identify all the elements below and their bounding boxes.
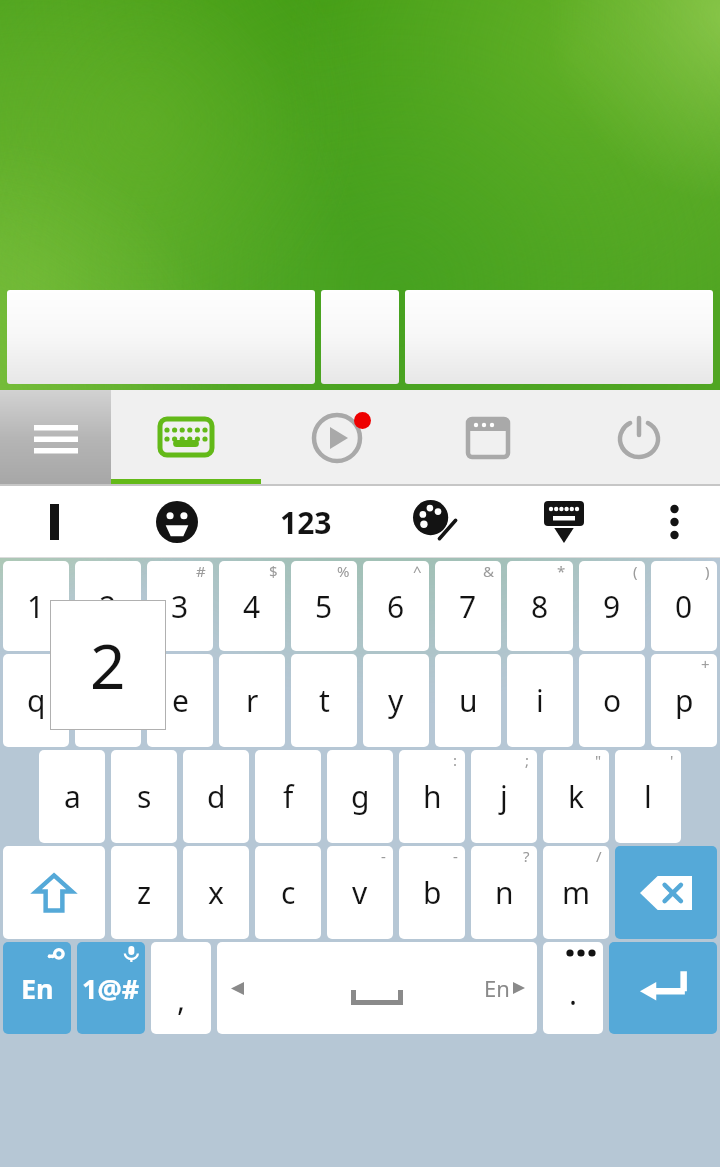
- staticText: f: [283, 776, 294, 817]
- button[interactable]: u: [435, 654, 501, 747]
- button[interactable]: 9: [579, 561, 645, 651]
- button[interactable]: n: [471, 846, 537, 939]
- staticText: p: [675, 680, 694, 721]
- staticText: ,: [177, 979, 186, 1020]
- button[interactable]: 8: [507, 561, 573, 651]
- button[interactable]: 1: [3, 561, 69, 651]
- staticText: (: [633, 561, 638, 581]
- button[interactable]: 2: [75, 561, 141, 651]
- button[interactable]: Space: [217, 942, 537, 1034]
- staticText: :: [453, 750, 458, 770]
- staticText: En: [21, 970, 54, 1007]
- button[interactable]: Period: [543, 942, 603, 1034]
- button[interactable]: h: [399, 750, 465, 843]
- staticText: l: [644, 776, 652, 817]
- button[interactable]: w: [75, 654, 141, 747]
- button[interactable]: 5: [291, 561, 357, 651]
- staticText: n: [495, 872, 514, 913]
- button[interactable]: q: [3, 654, 69, 747]
- button[interactable]: Keyboard: [111, 390, 261, 486]
- button[interactable]: Play: [261, 390, 412, 486]
- button[interactable]: o: [579, 654, 645, 747]
- staticText: z: [137, 872, 152, 913]
- button[interactable]: p: [651, 654, 717, 747]
- button[interactable]: Shift: [3, 846, 105, 939]
- button[interactable]: Clipboard: [0, 486, 112, 558]
- staticText: b: [423, 872, 442, 913]
- button[interactable]: 0: [651, 561, 717, 651]
- button[interactable]: g: [327, 750, 393, 843]
- staticText: t: [319, 680, 330, 721]
- staticText: ?: [523, 846, 530, 866]
- staticText: u: [459, 680, 478, 721]
- staticText: ): [705, 561, 710, 581]
- staticText: &: [483, 561, 494, 581]
- button[interactable]: 7: [435, 561, 501, 651]
- button[interactable]: v: [327, 846, 393, 939]
- staticText: 1@#: [82, 970, 140, 1007]
- button[interactable]: y: [363, 654, 429, 747]
- button[interactable]: Backspace: [615, 846, 717, 939]
- button[interactable]: i: [507, 654, 573, 747]
- staticText: ^: [413, 561, 422, 581]
- button[interactable]: Suggestion: [405, 290, 713, 384]
- button[interactable]: z: [111, 846, 177, 939]
- staticText: o: [603, 680, 622, 721]
- button[interactable]: r: [219, 654, 285, 747]
- button[interactable]: a: [39, 750, 105, 843]
- button[interactable]: j: [471, 750, 537, 843]
- staticText: 7: [459, 586, 477, 627]
- staticText: 0: [675, 586, 693, 627]
- button[interactable]: x: [183, 846, 249, 939]
- button[interactable]: 123: [241, 486, 370, 558]
- staticText: x: [208, 872, 224, 913]
- button[interactable]: Emoji: [112, 486, 241, 558]
- button[interactable]: Power: [563, 390, 714, 486]
- staticText: y: [388, 680, 404, 721]
- staticText: *: [557, 561, 566, 581]
- button[interactable]: 4: [219, 561, 285, 651]
- button[interactable]: l: [615, 750, 681, 843]
- button[interactable]: Suggestion: [7, 290, 315, 384]
- button[interactable]: t: [291, 654, 357, 747]
- button[interactable]: Enter: [609, 942, 717, 1034]
- staticText: 8: [531, 586, 549, 627]
- button[interactable]: Window: [412, 390, 563, 486]
- button[interactable]: d: [183, 750, 249, 843]
- button[interactable]: 3: [147, 561, 213, 651]
- staticText: 3: [171, 586, 189, 627]
- staticText: k: [568, 776, 585, 817]
- button[interactable]: Menu: [0, 390, 111, 486]
- button[interactable]: k: [543, 750, 609, 843]
- button[interactable]: 6: [363, 561, 429, 651]
- staticText: j: [500, 776, 508, 817]
- button[interactable]: e: [147, 654, 213, 747]
- staticText: -: [453, 846, 458, 866]
- staticText: #: [196, 561, 206, 581]
- button[interactable]: m: [543, 846, 609, 939]
- button[interactable]: Hide keyboard: [499, 486, 628, 558]
- staticText: d: [207, 776, 226, 817]
- staticText: +: [701, 654, 710, 674]
- staticText: c: [281, 872, 296, 913]
- button[interactable]: 1@#: [77, 942, 145, 1034]
- staticText: En: [484, 973, 510, 1003]
- staticText: w: [96, 680, 120, 721]
- button[interactable]: b: [399, 846, 465, 939]
- staticText: v: [352, 872, 368, 913]
- staticText: /: [596, 846, 602, 866]
- button[interactable]: Theme: [370, 486, 499, 558]
- button[interactable]: c: [255, 846, 321, 939]
- staticText: 4: [243, 586, 261, 627]
- staticText: 1: [27, 586, 45, 627]
- button[interactable]: f: [255, 750, 321, 843]
- staticText: 2: [99, 586, 117, 627]
- button[interactable]: Comma: [151, 942, 211, 1034]
- staticText: -: [381, 846, 386, 866]
- button[interactable]: Suggestion: [321, 290, 399, 384]
- button[interactable]: s: [111, 750, 177, 843]
- staticText: ;: [525, 750, 530, 770]
- button[interactable]: More options: [628, 486, 720, 558]
- button[interactable]: En: [3, 942, 71, 1034]
